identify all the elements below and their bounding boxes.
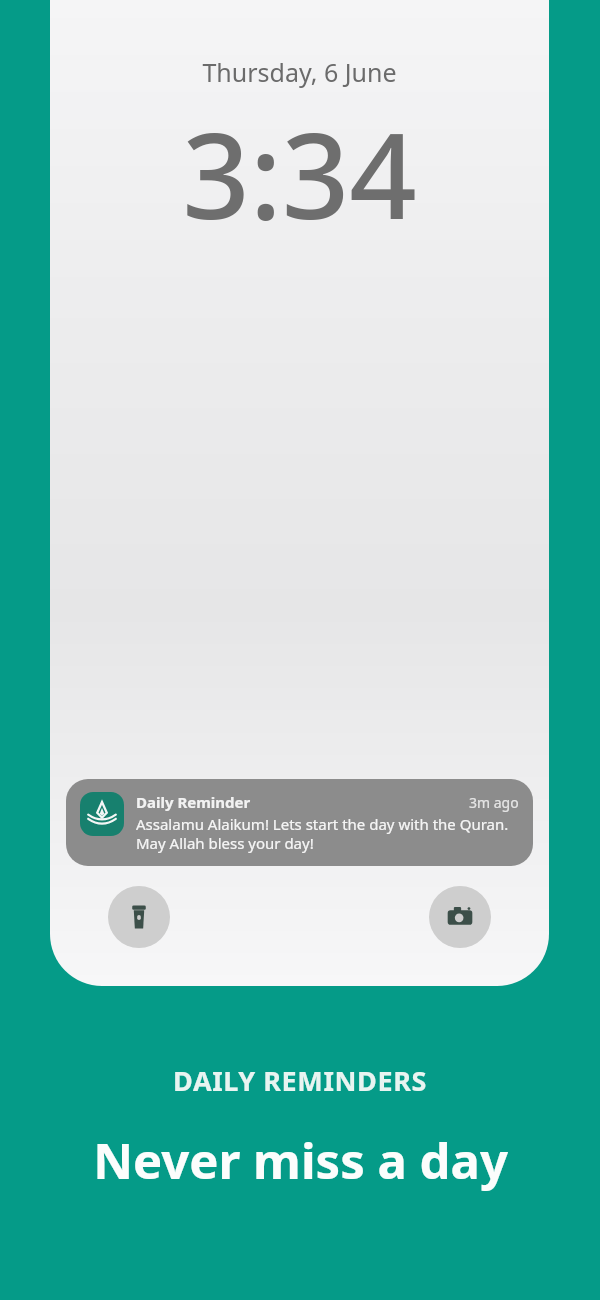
button[interactable]: Flashlight xyxy=(108,886,170,948)
staticText: Thursday, 6 June xyxy=(202,55,397,89)
staticText: Assalamu Alaikum! Lets start the day wit… xyxy=(136,814,519,853)
button[interactable]: Daily Reminder xyxy=(66,779,533,866)
staticText: Daily Reminder xyxy=(136,792,251,812)
staticText: 3m ago xyxy=(469,793,519,812)
staticText: Never miss a day xyxy=(93,1127,508,1194)
staticText: 3:34 xyxy=(182,93,417,254)
staticText: DAILY REMINDERS xyxy=(173,1062,427,1099)
button[interactable]: Camera xyxy=(429,886,491,948)
